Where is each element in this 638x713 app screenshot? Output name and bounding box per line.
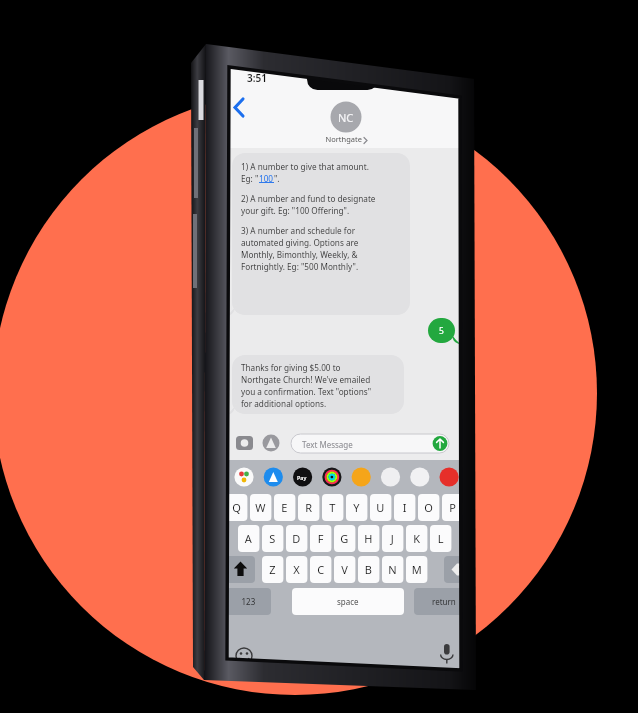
button[interactable]	[290, 432, 430, 456]
button[interactable]: Back	[228, 92, 258, 124]
button[interactable]: Send	[430, 434, 452, 454]
button[interactable]	[292, 588, 404, 615]
button[interactable]: Dictate	[438, 642, 460, 668]
button[interactable]	[414, 588, 474, 615]
button[interactable]: Northgate contact	[318, 100, 376, 148]
button[interactable]: Emoji keyboard	[234, 646, 256, 668]
button[interactable]: Camera	[231, 433, 257, 455]
button[interactable]: Apps	[262, 433, 284, 455]
button[interactable]: Numbers	[226, 588, 271, 615]
